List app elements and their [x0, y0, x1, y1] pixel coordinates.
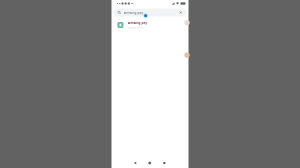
button[interactable]: samsung pay — [113, 8, 186, 16]
staticText: samsung pay app — [128, 26, 144, 29]
button[interactable]: samsung pay — [111, 18, 188, 32]
staticText: samsung pay — [128, 21, 148, 25]
button[interactable]: Recent apps — [163, 162, 165, 164]
staticText: samsung pay — [123, 10, 142, 14]
button[interactable]: Home — [148, 162, 151, 164]
button[interactable]: Back — [134, 162, 136, 164]
